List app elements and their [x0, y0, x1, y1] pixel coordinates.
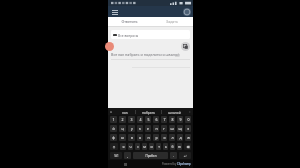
button[interactable]: Open navigation menu: [110, 7, 120, 17]
staticText: Все вопросы: [118, 33, 139, 37]
button[interactable]: Attach image: [181, 42, 190, 51]
button[interactable]: л: [169, 134, 175, 141]
button[interactable]: ч: [128, 143, 133, 150]
button[interactable]: 3: [128, 116, 135, 123]
button[interactable]: ,: [124, 152, 131, 159]
button[interactable]: набрать: [136, 108, 161, 115]
button[interactable]: Shift: [110, 143, 118, 150]
button[interactable]: д: [177, 134, 183, 141]
button[interactable]: щ: [177, 125, 183, 132]
staticText: т: [158, 144, 160, 149]
button[interactable]: Задать: [150, 17, 193, 26]
staticText: ш: [170, 126, 174, 131]
staticText: г: [163, 126, 165, 131]
button[interactable]: Backspace: [184, 143, 191, 150]
staticText: ,: [127, 153, 128, 158]
button[interactable]: й: [110, 125, 117, 132]
button[interactable]: Ответить: [108, 17, 150, 26]
staticText: 2: [121, 117, 124, 122]
staticText: о: [163, 135, 166, 140]
button[interactable]: Account: [183, 8, 191, 16]
button[interactable]: Пробел: [133, 152, 168, 159]
staticText: 7: [163, 117, 166, 122]
staticText: Вот как набрать и поделиться шкал: [111, 52, 175, 57]
button[interactable]: .: [170, 152, 177, 159]
button[interactable]: а: [137, 134, 143, 141]
staticText: и: [150, 144, 153, 149]
staticText: ч: [129, 144, 132, 149]
button[interactable]: в: [128, 134, 135, 141]
button[interactable]: г: [161, 125, 167, 132]
button[interactable]: ж: [185, 134, 191, 141]
staticText: а: [139, 135, 141, 140]
button[interactable]: Enter: [179, 152, 191, 159]
staticText: 6: [155, 117, 158, 122]
button[interactable]: 7: [161, 116, 167, 123]
staticText: з: [187, 126, 189, 131]
button[interactable]: 2: [119, 116, 126, 123]
button[interactable]: 9: [177, 116, 183, 123]
button[interactable]: з: [185, 125, 191, 132]
button[interactable]: с: [135, 143, 140, 150]
staticText: 5: [147, 117, 150, 122]
button[interactable]: т: [156, 143, 161, 150]
button[interactable]: ы: [119, 134, 126, 141]
staticText: 9: [179, 117, 182, 122]
staticText: в: [131, 135, 133, 140]
button[interactable]: м: [142, 143, 147, 150]
staticText: 3: [130, 117, 133, 122]
button[interactable]: Keyboard settings: [108, 108, 114, 115]
staticText: б: [171, 144, 174, 149]
button[interactable]: ц: [119, 125, 126, 132]
button[interactable]: р: [153, 134, 159, 141]
button[interactable]: о: [161, 134, 167, 141]
staticText: !#1: [114, 154, 119, 158]
staticText: 8: [171, 117, 174, 122]
button[interactable]: е: [145, 125, 151, 132]
button[interactable]: 0: [185, 116, 191, 123]
staticText: ой: [175, 52, 180, 57]
button[interactable]: 6: [153, 116, 159, 123]
staticText: ь: [165, 144, 167, 149]
staticText: Задать: [166, 19, 178, 24]
button[interactable]: я: [120, 143, 126, 150]
staticText: м: [143, 144, 146, 149]
button[interactable]: к: [137, 125, 143, 132]
staticText: 4: [139, 117, 142, 122]
staticText: шкалой: [168, 110, 181, 114]
button[interactable]: More suggestions: [187, 108, 193, 115]
button[interactable]: ш: [169, 125, 175, 132]
button[interactable]: !#1: [110, 152, 122, 159]
button[interactable]: Все вопросы: [111, 30, 190, 39]
button[interactable]: б: [170, 143, 175, 150]
staticText: ц: [121, 126, 124, 131]
button[interactable]: как: [114, 108, 135, 115]
staticText: й: [112, 126, 115, 131]
staticText: н: [155, 126, 158, 131]
staticText: л: [171, 135, 174, 140]
button[interactable]: у: [128, 125, 135, 132]
button[interactable]: и: [149, 143, 154, 150]
button[interactable]: Profile photo: [105, 42, 114, 51]
staticText: щ: [178, 126, 182, 131]
staticText: 1: [112, 117, 115, 122]
staticText: Ответить: [121, 19, 138, 24]
button[interactable]: 5: [145, 116, 151, 123]
button[interactable]: н: [153, 125, 159, 132]
staticText: я: [122, 144, 125, 149]
button[interactable]: 1: [110, 116, 117, 123]
staticText: д: [179, 135, 182, 140]
button[interactable]: 4: [137, 116, 143, 123]
button[interactable]: ф: [110, 134, 117, 141]
staticText: Clipchamp: [177, 162, 191, 166]
button[interactable]: п: [145, 134, 151, 141]
staticText: ф: [112, 135, 115, 140]
staticText: .: [173, 153, 174, 158]
button[interactable]: ь: [163, 143, 168, 150]
button[interactable]: шкалой: [162, 108, 187, 115]
button[interactable]: 8: [169, 116, 175, 123]
button[interactable]: ю: [177, 143, 182, 150]
staticText: ж: [187, 135, 190, 140]
staticText: е: [147, 126, 149, 131]
